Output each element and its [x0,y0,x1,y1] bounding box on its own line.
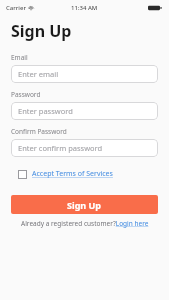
staticText: Carrier [6,4,26,12]
staticText: 11:34 AM [71,4,98,12]
button[interactable]: Already a registered customer?Login here [0,219,169,228]
button[interactable]: Sign Up [11,195,158,214]
staticText: Password [11,90,41,99]
staticText: Enter confirm password [18,143,103,153]
staticText: Accept Terms of Services [32,169,113,179]
button[interactable]: Enter email [11,65,158,83]
staticText: Email [11,53,28,62]
staticText: Sign Up [11,20,72,42]
staticText: Enter password [18,106,73,116]
staticText: Sign Up [67,199,102,211]
button[interactable]: Enter confirm password [11,139,158,157]
staticText: Confirm Password [11,127,67,136]
button[interactable]: Enter password [11,102,158,120]
staticText: Enter email [18,69,59,79]
button[interactable]: Accept Terms of Services [18,169,113,179]
staticText: Already a registered customer?Login here [21,219,149,228]
